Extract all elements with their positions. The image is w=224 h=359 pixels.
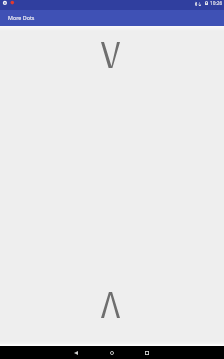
button[interactable]: Scroll up [98,289,123,321]
button[interactable]: Recent apps [134,346,160,359]
button[interactable]: Back [63,346,89,359]
staticText: 10:26 [210,0,223,7]
staticText: More Dots [8,14,35,21]
button[interactable]: Scroll down [98,39,123,71]
button[interactable]: Home [99,346,125,359]
